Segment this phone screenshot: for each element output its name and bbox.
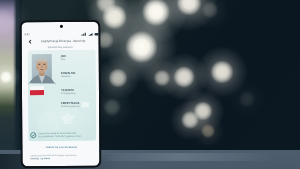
staticText: się więcej [40,157,50,160]
staticText: Nr legitymacji [61,92,76,95]
button[interactable]: Dowiedz [30,157,50,160]
staticText: Dokument ważny do dnia 30.06.2025 [38,132,76,135]
staticText: Imię [61,58,66,61]
staticText: JAN [61,54,67,58]
staticText: Nazwisko [61,75,71,78]
staticText: 9:41 [25,32,31,36]
staticText: Legitymacja nie potwierdza twojego upraw… [30,154,76,157]
staticText: EMERYTALNA [61,101,80,105]
staticText: 12345678 [61,88,74,92]
button[interactable]: Back [26,37,34,45]
button[interactable]: JAN [28,50,96,141]
button[interactable]: ZOBACZ NA CAŁYM EKRANIE [22,146,99,149]
staticText: Sprawdź datę ważności [22,46,99,49]
staticText: ZOBACZ NA CAŁYM EKRANIE [45,146,77,149]
staticText: KOWALSKI [61,71,76,75]
staticText: Rodzaj legitymacji [61,105,80,108]
staticText: Dowiedz [30,157,39,160]
staticText: Nr i podpisano: 15.03.2021 godzina 12:04 [38,135,81,138]
staticText: Legitymacja Emeryta - Rencisty [31,39,96,43]
